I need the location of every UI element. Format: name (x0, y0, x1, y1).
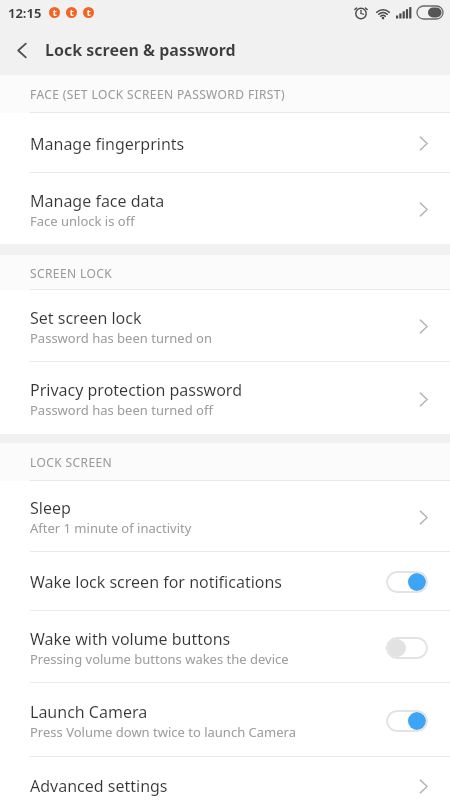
button[interactable]: Set screen lock (0, 290, 450, 361)
staticText: Pressing volume buttons wakes the device (30, 650, 289, 668)
button[interactable]: Wake with volume buttons (0, 611, 450, 682)
staticText: Manage fingerprints (30, 133, 185, 155)
staticText: Sleep (30, 497, 71, 519)
staticText: Launch Camera (30, 701, 148, 723)
staticText: LOCK SCREEN (30, 454, 113, 470)
button[interactable]: Sleep (0, 481, 450, 551)
staticText: t (70, 7, 74, 18)
staticText: Face unlock is off (30, 212, 135, 230)
button[interactable]: Privacy protection password (0, 362, 450, 434)
staticText: SCREEN LOCK (30, 265, 113, 281)
staticText: Press Volume down twice to launch Camera (30, 723, 296, 741)
staticText: Lock screen & password (45, 39, 236, 61)
staticText: Set screen lock (30, 307, 142, 329)
staticText: Advanced settings (30, 775, 168, 797)
button[interactable] (17, 42, 27, 59)
staticText: Wake lock screen for notifications (30, 571, 283, 593)
staticText: FACE (SET LOCK SCREEN PASSWORD FIRST) (30, 86, 285, 102)
button[interactable]: Advanced settings (0, 757, 450, 800)
button[interactable] (386, 637, 428, 659)
button[interactable]: Launch Camera (0, 683, 450, 756)
button[interactable]: Manage fingerprints (0, 113, 450, 172)
button[interactable]: Wake lock screen for notifications (0, 552, 450, 610)
staticText: 12:15 (8, 4, 42, 22)
staticText: Password has been turned on (30, 329, 212, 347)
staticText: Manage face data (30, 190, 165, 212)
staticText: Wake with volume buttons (30, 628, 231, 650)
staticText: Password has been turned off (30, 401, 213, 419)
staticText: After 1 minute of inactivity (30, 519, 192, 537)
button[interactable]: Manage face data (0, 173, 450, 244)
button[interactable] (386, 710, 428, 732)
staticText: Privacy protection password (30, 379, 242, 401)
button[interactable] (386, 571, 428, 593)
staticText: t (87, 7, 91, 18)
staticText: t (53, 7, 57, 18)
